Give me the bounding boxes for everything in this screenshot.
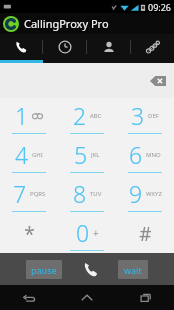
button[interactable]: 4 (0, 136, 58, 175)
button[interactable]: Back (0, 285, 58, 310)
staticText: 1 (15, 100, 29, 131)
staticText: 8 (73, 178, 87, 209)
button[interactable]: 5 (58, 136, 116, 175)
staticText: PQRS (30, 190, 46, 198)
staticText: DEF (148, 112, 159, 120)
staticText: + (93, 226, 99, 240)
staticText: # (139, 221, 152, 247)
staticText: 7 (13, 178, 27, 209)
staticText: ABC (90, 112, 102, 120)
staticText: 6 (129, 139, 143, 170)
button[interactable]: 3 (116, 98, 174, 136)
button[interactable]: * (0, 214, 58, 253)
button[interactable]: 2 (58, 98, 116, 136)
button[interactable]: wait (118, 260, 148, 279)
staticText: 0 (76, 217, 90, 248)
staticText: GHI (32, 151, 43, 159)
staticText: wait (124, 264, 142, 276)
staticText: * (24, 221, 35, 247)
button[interactable]: pause (26, 260, 62, 279)
button[interactable]: 1 (0, 98, 58, 136)
staticText: pause (31, 264, 57, 276)
button[interactable]: Recents (116, 285, 174, 310)
button[interactable]: 9 (116, 175, 174, 214)
button[interactable]: Dialer (0, 34, 42, 60)
staticText: JKL (91, 151, 100, 159)
button[interactable]: # (116, 214, 174, 253)
staticText: MNO (146, 151, 161, 159)
button[interactable]: Call log (43, 34, 86, 60)
button[interactable]: 0 (58, 214, 116, 253)
staticText: 5 (74, 139, 88, 170)
staticText: 2 (73, 100, 87, 131)
button[interactable]: 8 (58, 175, 116, 214)
button[interactable]: Backspace (147, 70, 169, 92)
staticText: 09:26 (148, 1, 172, 13)
button[interactable]: Favorites (131, 34, 174, 60)
button[interactable]: Home (58, 285, 116, 310)
button[interactable]: 6 (116, 136, 174, 175)
button[interactable]: Call (62, 253, 118, 285)
button[interactable]: Contacts (87, 34, 130, 60)
staticText: WXYZ (146, 190, 162, 198)
staticText: TUV (90, 190, 102, 198)
staticText: 3 (131, 100, 145, 131)
staticText: 4 (15, 139, 29, 170)
button[interactable]: 7 (0, 175, 58, 214)
staticText: CallingProxy Pro (24, 16, 109, 31)
staticText: 9 (129, 178, 143, 209)
